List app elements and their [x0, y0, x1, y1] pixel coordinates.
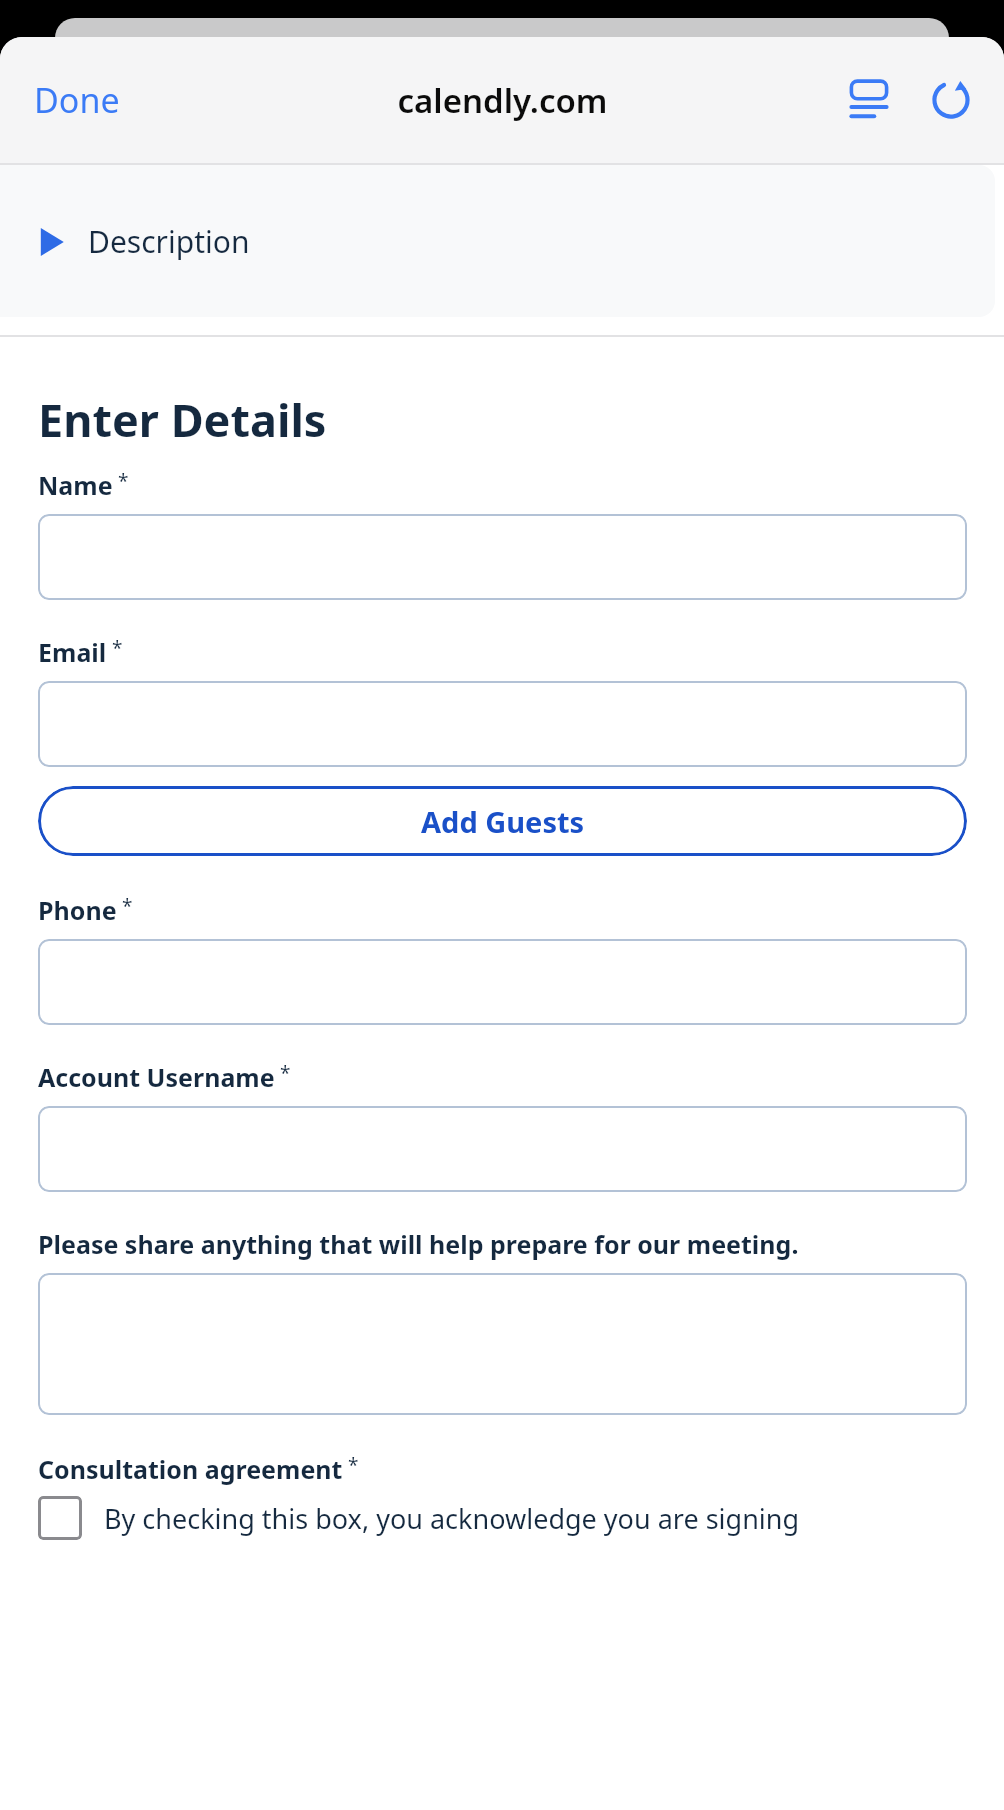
button[interactable]	[38, 1273, 967, 1415]
staticText: Consultation agreement	[38, 1452, 343, 1486]
staticText: *	[348, 1452, 359, 1478]
staticText: *	[280, 1060, 291, 1086]
staticText: Description	[88, 221, 250, 262]
button[interactable]	[38, 514, 967, 600]
staticText: calendly.com	[397, 78, 608, 123]
button[interactable]: Description	[0, 165, 995, 317]
staticText: Add Guests	[421, 802, 585, 841]
staticText: Account Username	[38, 1060, 275, 1094]
staticText: Please share anything that will help pre…	[38, 1227, 799, 1261]
staticText: Phone	[38, 893, 117, 927]
staticText: Name	[38, 468, 113, 502]
staticText: *	[112, 635, 123, 661]
button[interactable]: Done	[12, 65, 142, 135]
button[interactable]	[38, 1106, 967, 1192]
button[interactable]: Reload	[920, 69, 982, 131]
button[interactable]	[38, 681, 967, 767]
staticText: By checking this box, you acknowledge yo…	[104, 1500, 800, 1537]
staticText: Email	[38, 635, 107, 669]
button[interactable]: Add Guests	[38, 786, 967, 856]
button[interactable]: By checking this box, you acknowledge yo…	[38, 1496, 967, 1540]
button[interactable]	[38, 939, 967, 1025]
staticText: *	[118, 468, 129, 494]
staticText: Enter Details	[38, 389, 327, 450]
staticText: *	[122, 893, 133, 919]
button[interactable]: Reader view	[838, 69, 900, 131]
